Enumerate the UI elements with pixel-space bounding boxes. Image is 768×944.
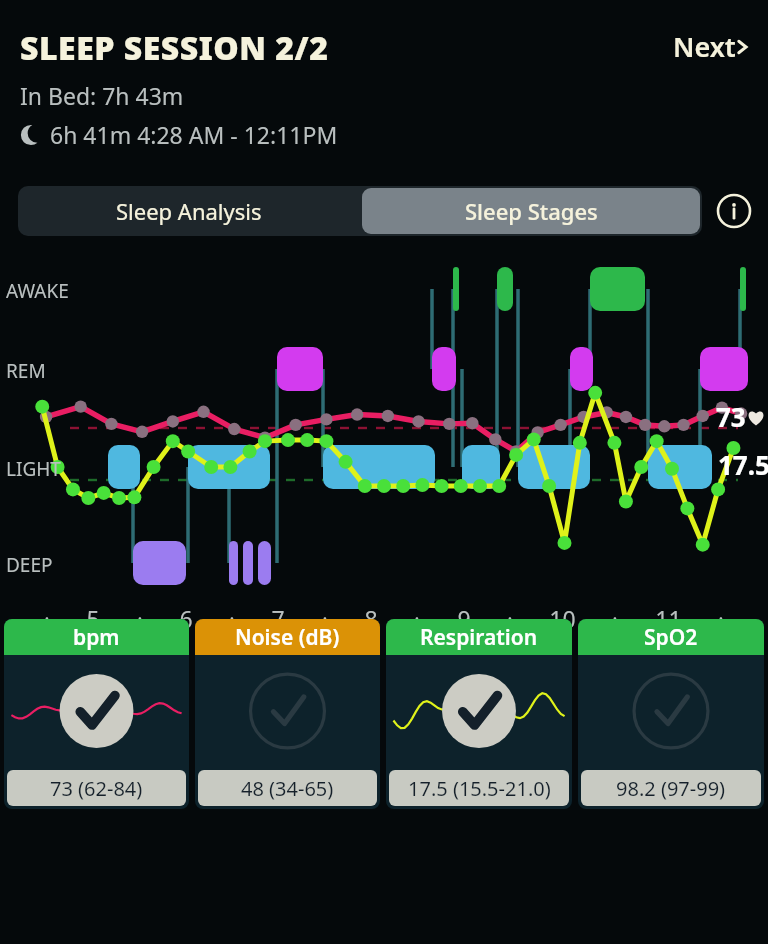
staticText: 10 <box>549 603 576 634</box>
button[interactable]: Noise (dB) <box>195 619 380 809</box>
staticText: 5 <box>86 603 100 634</box>
staticText: · <box>414 605 420 632</box>
button[interactable]: bpm <box>4 619 189 809</box>
button[interactable]: SpO2 <box>578 619 764 809</box>
staticText: · <box>44 605 50 632</box>
staticText: 73 (62-84) <box>50 775 143 802</box>
staticText: 73 <box>716 399 746 434</box>
staticText: DEEP <box>6 552 53 578</box>
staticText: Respiration <box>420 623 538 652</box>
button[interactable]: Sleep Analysis <box>18 186 360 236</box>
button[interactable]: Info <box>716 193 752 229</box>
staticText: · <box>612 605 618 632</box>
staticText: AWAKE <box>6 278 69 304</box>
staticText: 8 <box>364 603 378 634</box>
staticText: · <box>137 605 143 632</box>
staticText: bpm <box>73 623 120 652</box>
staticText: Noise (dB) <box>235 623 340 652</box>
staticText: 6h 41m 4:28 AM - 12:11PM <box>50 119 338 150</box>
staticText: SLEEP SESSION 2/2 <box>20 26 329 70</box>
staticText: 9 <box>457 603 471 634</box>
staticText: Sleep Stages <box>465 196 598 226</box>
staticText: · <box>229 605 235 632</box>
staticText: In Bed: 7h 43m <box>20 80 184 111</box>
button[interactable]: Sleep Stages <box>362 188 700 234</box>
staticText: · <box>718 605 724 632</box>
staticText: 17.5 (15.5-21.0) <box>408 775 551 802</box>
button[interactable]: Respiration <box>386 619 572 809</box>
staticText: 7 <box>271 603 285 634</box>
staticText: 11 <box>655 603 682 634</box>
staticText: 98.2 (97-99) <box>616 775 726 802</box>
staticText: LIGHT <box>6 456 61 482</box>
staticText: Sleep Analysis <box>116 196 262 226</box>
staticText: 48 (34-65) <box>241 775 334 802</box>
staticText: SpO2 <box>644 623 698 652</box>
staticText: Next <box>673 28 736 65</box>
staticText: · <box>322 605 328 632</box>
staticText: REM <box>6 358 46 384</box>
staticText: 6 <box>179 603 193 634</box>
staticText: · <box>507 605 513 632</box>
button[interactable]: Next <box>673 28 750 65</box>
staticText: 17.5 <box>718 447 768 482</box>
